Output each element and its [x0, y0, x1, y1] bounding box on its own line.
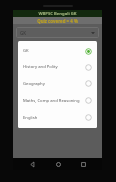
staticText: History and Polity — [23, 64, 83, 70]
button[interactable]: Back — [26, 158, 38, 170]
button[interactable]: English — [18, 109, 97, 126]
button[interactable]: GK — [18, 43, 97, 59]
staticText: GK — [23, 48, 83, 54]
staticText: Geography — [23, 81, 83, 87]
button[interactable]: Home — [52, 158, 64, 170]
button[interactable]: History and Polity — [18, 59, 97, 75]
staticText: Quiz covered = 4 % — [37, 18, 78, 24]
button[interactable]: Recent apps — [77, 158, 89, 170]
staticText: Maths, Comp and Reasoning — [23, 98, 83, 104]
staticText: WBPSC Bengali GK — [38, 11, 77, 17]
button[interactable]: Maths, Comp and Reasoning — [18, 92, 97, 109]
button[interactable]: GK — [16, 27, 99, 38]
button[interactable]: Geography — [18, 75, 97, 92]
staticText: GK — [20, 30, 27, 36]
staticText: English — [23, 115, 83, 121]
